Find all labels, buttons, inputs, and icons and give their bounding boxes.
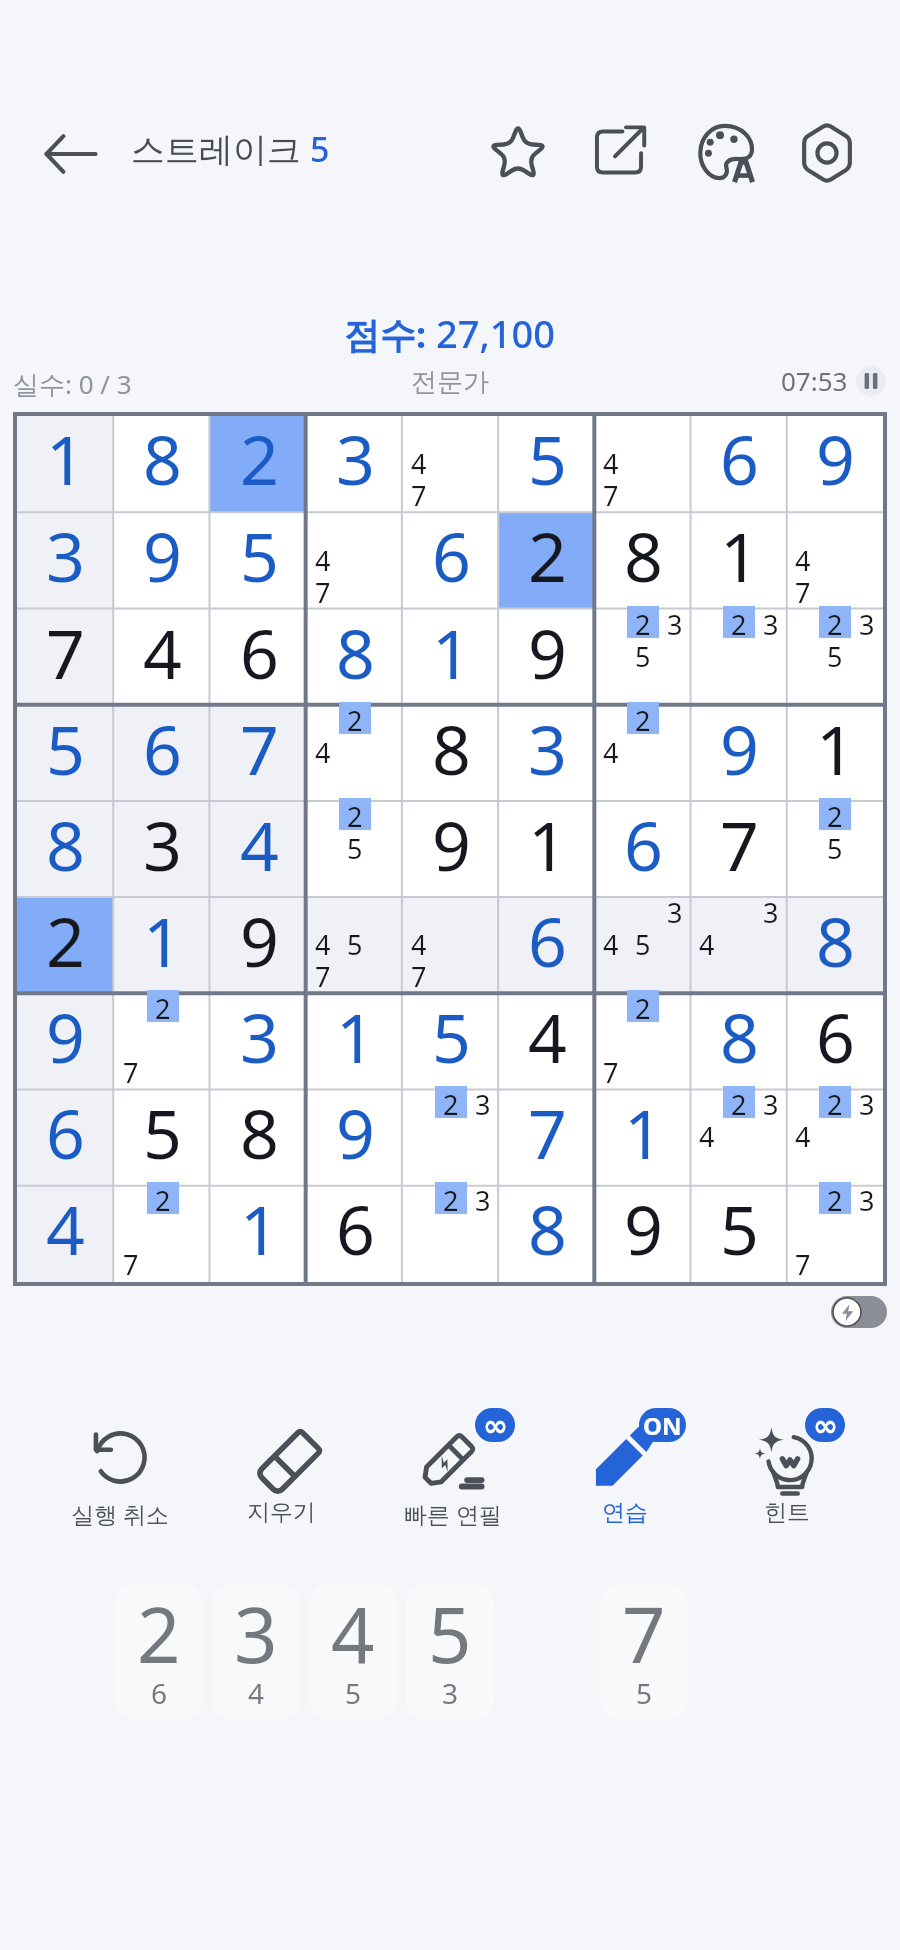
button[interactable]: 7 [499, 1090, 595, 1186]
button[interactable]: 6 [787, 994, 883, 1090]
button[interactable]: 3 [211, 994, 307, 1090]
button[interactable]: 1 [307, 994, 403, 1090]
button[interactable]: ON [543, 1390, 707, 1530]
button[interactable]: 2 [403, 1186, 499, 1282]
button[interactable]: ∞ [705, 1390, 869, 1530]
button[interactable]: Share [583, 116, 655, 188]
button[interactable]: 5 [406, 1584, 494, 1720]
button[interactable]: 5 [403, 994, 499, 1090]
button[interactable]: 4 [787, 513, 883, 610]
button[interactable]: 2 [211, 416, 307, 513]
button[interactable]: 9 [403, 802, 499, 898]
button[interactable]: 6 [595, 802, 691, 898]
button[interactable]: 8 [307, 610, 403, 706]
button[interactable]: 8 [787, 898, 883, 994]
button[interactable]: 1 [114, 898, 211, 994]
button[interactable]: 2 [307, 706, 403, 802]
button[interactable]: 9 [211, 898, 307, 994]
button[interactable]: 4 [114, 610, 211, 706]
button[interactable]: 9 [499, 610, 595, 706]
button[interactable]: 1 [499, 802, 595, 898]
button[interactable]: 8 [114, 416, 211, 513]
button[interactable]: 1 [211, 1186, 307, 1282]
button[interactable]: 6 [114, 706, 211, 802]
button[interactable]: 2 [403, 1090, 499, 1186]
button[interactable]: 8 [403, 706, 499, 802]
button[interactable]: 7 [17, 610, 114, 706]
button[interactable]: ∞ [371, 1390, 535, 1530]
button[interactable]: 6 [499, 898, 595, 994]
button[interactable]: 9 [17, 994, 114, 1090]
button[interactable]: 지우기 [199, 1390, 363, 1530]
button[interactable]: 2 [787, 802, 883, 898]
button[interactable]: 2 [691, 610, 787, 706]
button[interactable]: 4 [211, 802, 307, 898]
button[interactable]: 2 [595, 610, 691, 706]
button[interactable]: 1 [403, 610, 499, 706]
button[interactable]: 5 [114, 1090, 211, 1186]
button[interactable]: 4 [403, 416, 499, 513]
button[interactable]: Theme [691, 116, 763, 188]
button[interactable]: 2 [17, 898, 114, 994]
button[interactable]: 2 [499, 513, 595, 610]
button[interactable]: 3 [212, 1584, 300, 1720]
button[interactable]: 4 [307, 898, 403, 994]
button[interactable]: 3 [114, 802, 211, 898]
button[interactable]: 8 [691, 994, 787, 1090]
button[interactable]: Favourite [482, 117, 554, 189]
button[interactable]: 4 [403, 898, 499, 994]
button[interactable]: 6 [211, 610, 307, 706]
button[interactable]: 2 [691, 1090, 787, 1186]
button[interactable]: 7 [691, 802, 787, 898]
button[interactable]: 8 [211, 1090, 307, 1186]
button[interactable]: Pause [856, 366, 886, 396]
button[interactable]: 4 [17, 1186, 114, 1282]
button[interactable]: 9 [307, 1090, 403, 1186]
button[interactable]: 4 [595, 416, 691, 513]
button[interactable]: 2 [595, 994, 691, 1090]
button[interactable]: 9 [114, 513, 211, 610]
button[interactable]: 9 [595, 1186, 691, 1282]
button[interactable]: 1 [17, 416, 114, 513]
button[interactable]: 3 [595, 898, 691, 994]
button[interactable]: 1 [787, 706, 883, 802]
button[interactable]: 6 [307, 1186, 403, 1282]
button[interactable]: 2 [787, 1186, 883, 1282]
button[interactable]: 3 [499, 706, 595, 802]
button[interactable]: 4 [499, 994, 595, 1090]
button[interactable]: 2 [787, 1090, 883, 1186]
button[interactable]: 1 [691, 513, 787, 610]
button[interactable]: Back [36, 119, 106, 189]
button[interactable]: 실행 취소 [38, 1390, 202, 1530]
staticText: 2 [347, 702, 363, 734]
button[interactable]: 2 [114, 1186, 211, 1282]
button[interactable]: 3 [307, 416, 403, 513]
button[interactable]: 8 [595, 513, 691, 610]
button[interactable]: 8 [17, 802, 114, 898]
button[interactable]: 3 [691, 898, 787, 994]
button[interactable]: 6 [403, 513, 499, 610]
button[interactable]: 8 [499, 1186, 595, 1282]
button[interactable]: 5 [211, 513, 307, 610]
button[interactable]: Settings [791, 117, 863, 189]
button[interactable]: 2 [115, 1584, 203, 1720]
button[interactable]: 7 [600, 1584, 688, 1720]
button[interactable]: 2 [114, 994, 211, 1090]
button[interactable]: 2 [307, 802, 403, 898]
button[interactable]: 1 [595, 1090, 691, 1186]
button[interactable]: 2 [787, 610, 883, 706]
button[interactable]: 6 [691, 416, 787, 513]
button[interactable]: 4 [307, 513, 403, 610]
button[interactable]: 5 [17, 706, 114, 802]
button[interactable]: 4 [309, 1584, 397, 1720]
button[interactable]: 2 [595, 706, 691, 802]
button[interactable]: 9 [787, 416, 883, 513]
button[interactable]: 9 [691, 706, 787, 802]
button[interactable]: Auto pencil toggle [831, 1296, 887, 1328]
button[interactable]: 6 [17, 1090, 114, 1186]
button[interactable]: 3 [17, 513, 114, 610]
button[interactable]: 스트레이크 [131, 122, 330, 176]
button[interactable]: 5 [499, 416, 595, 513]
button[interactable]: 7 [211, 706, 307, 802]
button[interactable]: 5 [691, 1186, 787, 1282]
